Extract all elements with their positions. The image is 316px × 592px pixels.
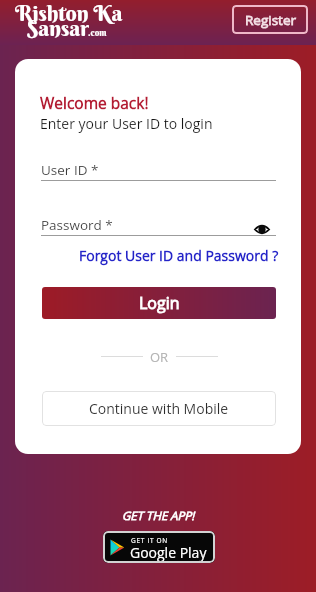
staticText: GET IT ON	[131, 536, 168, 545]
staticText: Login	[139, 292, 180, 314]
staticText: Continue with Mobile	[89, 399, 229, 418]
staticText: OR	[150, 348, 169, 364]
staticText: Enter your User ID to login	[40, 114, 213, 133]
staticText: Welcome back!	[40, 92, 149, 113]
button[interactable]: Continue with Mobile	[42, 391, 276, 426]
staticText: Forgot User ID and Password ?	[79, 246, 279, 265]
button[interactable]: Show password	[248, 218, 276, 240]
staticText: Register	[245, 11, 296, 29]
button[interactable]: Forgot User ID and Password ?	[15, 245, 279, 265]
button[interactable]: Login	[42, 287, 276, 319]
staticText: Sansar	[27, 14, 89, 41]
staticText: Google Play	[130, 543, 207, 562]
staticText: User ID *	[41, 161, 99, 179]
staticText: Rishton Ka	[15, 0, 123, 26]
button[interactable]: Register	[232, 5, 308, 34]
button[interactable]: Get it on Google Play	[103, 531, 215, 563]
staticText: Password *	[41, 216, 113, 234]
staticText: GET THE APP!	[122, 508, 195, 524]
staticText: .com	[88, 27, 107, 38]
